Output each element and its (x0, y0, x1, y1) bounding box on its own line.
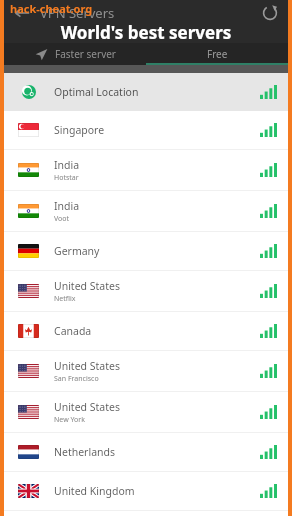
button[interactable]: United Kingdom (4, 472, 288, 510)
button[interactable]: Faster server (4, 43, 146, 65)
staticText: Germany (54, 244, 100, 258)
button[interactable]: Netherlands (4, 433, 288, 471)
staticText: Singapore (54, 123, 105, 137)
staticText: Optimal Location (54, 85, 139, 99)
button[interactable]: India (4, 191, 288, 231)
button[interactable]: Singapore (4, 111, 288, 149)
staticText: United States (54, 400, 120, 414)
button[interactable]: Refresh (260, 3, 280, 23)
button[interactable]: Free (146, 43, 288, 65)
staticText: United States (54, 279, 120, 293)
staticText: New York (54, 415, 85, 425)
staticText: Netflix (54, 294, 76, 304)
button[interactable]: Back (12, 3, 32, 23)
staticText: United Kingdom (54, 484, 135, 498)
staticText: Netherlands (54, 445, 116, 459)
staticText: Hotstar (54, 173, 79, 183)
staticText: India (54, 199, 80, 213)
staticText: Canada (54, 324, 92, 338)
staticText: World's best servers (4, 21, 288, 43)
staticText: Free (207, 47, 228, 61)
staticText: VPN Servers (40, 4, 115, 22)
button[interactable]: United States (4, 392, 288, 432)
staticText: San Francisco (54, 374, 99, 384)
staticText: hack-cheat.org (10, 1, 93, 16)
button[interactable]: Canada (4, 312, 288, 350)
button[interactable]: United States (4, 351, 288, 391)
button[interactable]: Germany (4, 232, 288, 270)
button[interactable]: India (4, 150, 288, 190)
staticText: United States (54, 359, 120, 373)
staticText: Voot (54, 214, 70, 224)
staticText: Faster server (55, 47, 116, 61)
button[interactable]: United States (4, 271, 288, 311)
staticText: India (54, 158, 80, 172)
button[interactable]: Optimal Location (4, 73, 288, 111)
